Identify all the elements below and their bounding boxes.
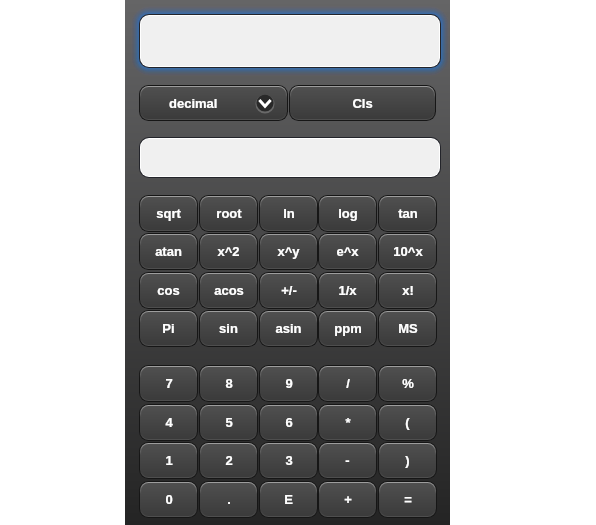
staticText: Cls xyxy=(352,96,373,111)
button[interactable]: x^2 xyxy=(199,233,258,270)
staticText: +/- xyxy=(281,283,297,298)
staticText: ppm xyxy=(334,321,362,336)
button[interactable]: % xyxy=(378,365,437,402)
staticText: root xyxy=(216,206,242,221)
button[interactable]: E xyxy=(259,481,318,518)
button[interactable] xyxy=(139,14,441,68)
button[interactable]: 1/x xyxy=(318,272,377,309)
button[interactable]: sin xyxy=(199,310,258,347)
button[interactable]: 5 xyxy=(199,404,258,441)
button[interactable]: ) xyxy=(378,442,437,479)
staticText: . xyxy=(227,492,231,507)
button[interactable]: atan xyxy=(139,233,198,270)
button[interactable]: Cls xyxy=(289,85,436,121)
staticText: 1/x xyxy=(338,283,357,298)
staticText: * xyxy=(345,415,351,430)
staticText: acos xyxy=(214,283,244,298)
button[interactable]: 10^x xyxy=(378,233,437,270)
button[interactable]: 4 xyxy=(139,404,198,441)
staticText: log xyxy=(338,206,358,221)
staticText: atan xyxy=(155,244,182,259)
staticText: 2 xyxy=(225,453,233,468)
staticText: MS xyxy=(398,321,418,336)
button[interactable]: decimal xyxy=(139,85,288,121)
button[interactable]: 2 xyxy=(199,442,258,479)
staticText: 0 xyxy=(165,492,173,507)
staticText: asin xyxy=(275,321,302,336)
staticText: + xyxy=(344,492,352,507)
button[interactable] xyxy=(139,137,441,178)
button[interactable]: + xyxy=(318,481,377,518)
button[interactable]: asin xyxy=(259,310,318,347)
staticText: Pi xyxy=(162,321,175,336)
staticText: = xyxy=(404,492,412,507)
button[interactable]: sqrt xyxy=(139,195,198,232)
button[interactable]: = xyxy=(378,481,437,518)
staticText: x! xyxy=(402,283,414,298)
staticText: decimal xyxy=(169,96,218,111)
staticText: 6 xyxy=(285,415,293,430)
button[interactable]: 0 xyxy=(139,481,198,518)
staticText: x^2 xyxy=(217,244,240,259)
button[interactable]: 8 xyxy=(199,365,258,402)
button[interactable]: 3 xyxy=(259,442,318,479)
staticText: ) xyxy=(405,453,410,468)
staticText: ln xyxy=(283,206,295,221)
button[interactable]: ppm xyxy=(318,310,377,347)
staticText: e^x xyxy=(336,244,359,259)
button[interactable]: x! xyxy=(378,272,437,309)
button[interactable]: / xyxy=(318,365,377,402)
button[interactable]: MS xyxy=(378,310,437,347)
button[interactable]: e^x xyxy=(318,233,377,270)
staticText: tan xyxy=(398,206,418,221)
button[interactable]: 7 xyxy=(139,365,198,402)
other: Open number base menu xyxy=(255,93,275,113)
staticText: 3 xyxy=(285,453,293,468)
staticText: % xyxy=(402,376,414,391)
staticText: sqrt xyxy=(156,206,181,221)
button[interactable]: log xyxy=(318,195,377,232)
button[interactable]: - xyxy=(318,442,377,479)
staticText: 10^x xyxy=(393,244,423,259)
staticText: E xyxy=(284,492,293,507)
button[interactable]: 1 xyxy=(139,442,198,479)
staticText: 7 xyxy=(165,376,173,391)
staticText: 8 xyxy=(225,376,233,391)
staticText: / xyxy=(346,376,350,391)
button[interactable]: Pi xyxy=(139,310,198,347)
button[interactable]: x^y xyxy=(259,233,318,270)
staticText: ( xyxy=(405,415,410,430)
staticText: 1 xyxy=(165,453,173,468)
button[interactable]: 6 xyxy=(259,404,318,441)
staticText: 5 xyxy=(225,415,233,430)
staticText: 4 xyxy=(165,415,173,430)
button[interactable]: ln xyxy=(259,195,318,232)
button[interactable]: cos xyxy=(139,272,198,309)
staticText: sin xyxy=(219,321,238,336)
button[interactable]: acos xyxy=(199,272,258,309)
button[interactable]: . xyxy=(199,481,258,518)
staticText: - xyxy=(345,453,350,468)
button[interactable]: +/- xyxy=(259,272,318,309)
button[interactable]: tan xyxy=(378,195,437,232)
button[interactable]: * xyxy=(318,404,377,441)
staticText: x^y xyxy=(277,244,300,259)
button[interactable]: root xyxy=(199,195,258,232)
button[interactable]: 9 xyxy=(259,365,318,402)
staticText: cos xyxy=(157,283,180,298)
staticText: 9 xyxy=(285,376,293,391)
button[interactable]: ( xyxy=(378,404,437,441)
